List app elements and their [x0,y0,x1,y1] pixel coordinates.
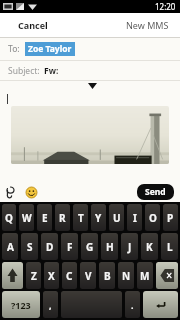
button[interactable]: Attach file [2,184,18,200]
staticText: Fw: [44,65,59,77]
button[interactable]: J [121,233,138,260]
staticText: Cancel [18,19,48,31]
button[interactable]: New MMS [120,15,175,35]
button[interactable]: Q [2,204,16,231]
button[interactable]: Enter [143,291,178,318]
button[interactable]: Insert emoji [24,185,38,199]
staticText: 12:20 [155,1,176,12]
staticText: T [78,211,84,225]
button[interactable]: F [61,233,78,260]
button[interactable]: V [80,262,96,289]
button[interactable]: I [127,204,142,231]
staticText: ?123 [11,299,31,311]
button[interactable]: L [161,233,178,260]
staticText: F [67,240,73,254]
staticText: P [167,211,174,225]
staticText: H [106,240,114,254]
button[interactable]: Cancel [8,15,58,35]
button[interactable]: Y [91,204,106,231]
staticText: X [48,269,55,283]
staticText: K [146,240,153,254]
button[interactable]: G [81,233,98,260]
staticText: To: [8,43,20,55]
staticText: . [131,299,134,311]
button[interactable]: E [37,204,52,231]
staticText: M [140,269,150,283]
button[interactable]: O [145,204,160,231]
button[interactable]: H [101,233,118,260]
button[interactable]: A [2,233,18,260]
button[interactable] [61,291,122,318]
staticText: Zoe Taylor [28,43,72,55]
button[interactable]: , [43,291,58,318]
staticText: O [149,211,157,225]
staticText: E [42,211,48,225]
staticText: Q [5,211,13,225]
staticText: R [59,211,66,225]
staticText: C [66,269,73,283]
button[interactable]: X [44,262,59,289]
button[interactable]: C [62,262,77,289]
staticText: New MMS [126,19,169,31]
staticText: U [113,211,121,225]
staticText: J [128,240,132,254]
staticText: W [22,211,32,225]
staticText: Subject: [8,65,40,77]
button[interactable]: N [118,262,134,289]
button[interactable]: Send [137,184,174,200]
button[interactable]: Attached photo [11,106,169,164]
button[interactable]: W [19,204,34,231]
staticText: I [133,211,137,225]
staticText: B [104,269,111,283]
staticText: N [122,269,131,283]
staticText: D [46,240,54,254]
button[interactable]: Shift [2,262,23,289]
staticText: Y [95,211,102,225]
button[interactable]: Backspace [156,262,178,289]
staticText: , [49,299,52,311]
button[interactable]: R [55,204,70,231]
button[interactable]: M [137,262,153,289]
button[interactable]: B [99,262,115,289]
staticText: Send [145,186,166,198]
button[interactable]: . [125,291,140,318]
button[interactable]: U [109,204,124,231]
button[interactable]: K [141,233,158,260]
staticText: A [7,240,14,254]
staticText: Z [31,269,37,283]
button[interactable]: ?123 [2,291,40,318]
staticText: S [27,240,33,254]
button[interactable]: D [41,233,58,260]
button[interactable]: Zoe Taylor [25,42,75,56]
staticText: G [86,240,94,254]
staticText: L [167,240,173,254]
button[interactable]: S [21,233,38,260]
button[interactable]: P [163,204,178,231]
button[interactable]: T [73,204,88,231]
staticText: V [85,269,92,283]
button[interactable]: Z [26,262,41,289]
